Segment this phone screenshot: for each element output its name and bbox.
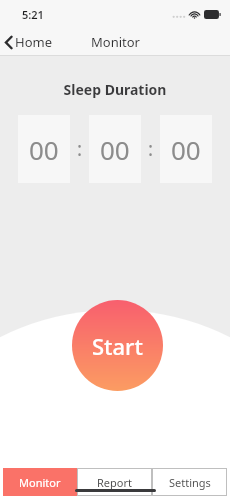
button[interactable]: Monitor (3, 468, 77, 496)
staticText: Home (15, 33, 52, 51)
staticText: Monitor (19, 475, 61, 490)
staticText: 5:21 (22, 7, 44, 22)
staticText: : (77, 136, 83, 162)
button[interactable]: Report (77, 468, 152, 496)
staticText: Monitor (91, 33, 140, 51)
button[interactable]: 00 (18, 115, 70, 183)
other: Home indicator (75, 489, 156, 492)
button[interactable]: Start (72, 300, 163, 391)
staticText: Start (92, 331, 143, 361)
button[interactable]: 00 (89, 115, 141, 183)
staticText: 00 (100, 132, 130, 167)
button[interactable]: Settings (152, 468, 227, 496)
button[interactable]: 00 (160, 115, 212, 183)
staticText: : (148, 136, 154, 162)
staticText: Report (97, 475, 132, 490)
staticText: Sleep Duration (0, 80, 230, 99)
button[interactable]: Home (0, 29, 60, 55)
staticText: 00 (29, 132, 59, 167)
staticText: 00 (171, 132, 201, 167)
staticText: Settings (169, 475, 211, 490)
